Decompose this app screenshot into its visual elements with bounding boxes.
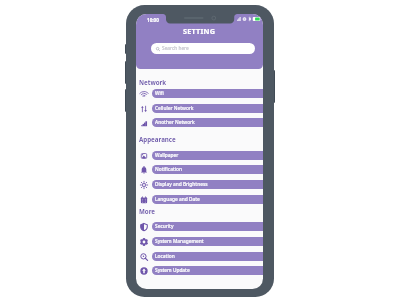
staticText: Another Network xyxy=(155,119,195,126)
staticText: 10:00 xyxy=(147,17,159,23)
button[interactable]: Search here xyxy=(151,43,255,54)
staticText: Security xyxy=(155,223,174,230)
button[interactable]: System Update xyxy=(136,263,263,278)
staticText: Language and Date xyxy=(155,196,200,203)
staticText: Network xyxy=(139,78,167,86)
button[interactable]: Security xyxy=(136,219,263,234)
staticText: Location xyxy=(155,253,175,260)
button[interactable]: System Management xyxy=(136,234,263,249)
staticText: More xyxy=(139,207,156,215)
button[interactable]: Another Network xyxy=(136,115,263,130)
staticText: Celluler Network xyxy=(155,105,194,112)
button[interactable]: Display and Brightness xyxy=(136,177,263,192)
staticText: Search here xyxy=(162,45,189,52)
other: Status icons xyxy=(237,17,261,21)
staticText: System Update xyxy=(155,267,190,274)
button[interactable]: Language and Date xyxy=(136,192,263,207)
button[interactable]: Wifi xyxy=(136,86,263,101)
button[interactable]: Celluler Network xyxy=(136,101,263,116)
staticText: Wallpaper xyxy=(155,152,179,159)
button[interactable]: Wallpaper xyxy=(136,148,263,163)
staticText: Wifi xyxy=(155,90,164,97)
staticText: Display and Brightness xyxy=(155,181,208,188)
staticText: SETTING xyxy=(183,26,216,36)
button[interactable]: Notification xyxy=(136,162,263,177)
staticText: System Management xyxy=(155,238,204,245)
staticText: Notification xyxy=(155,166,182,173)
button[interactable]: Location xyxy=(136,249,263,264)
staticText: Appearance xyxy=(139,135,176,143)
